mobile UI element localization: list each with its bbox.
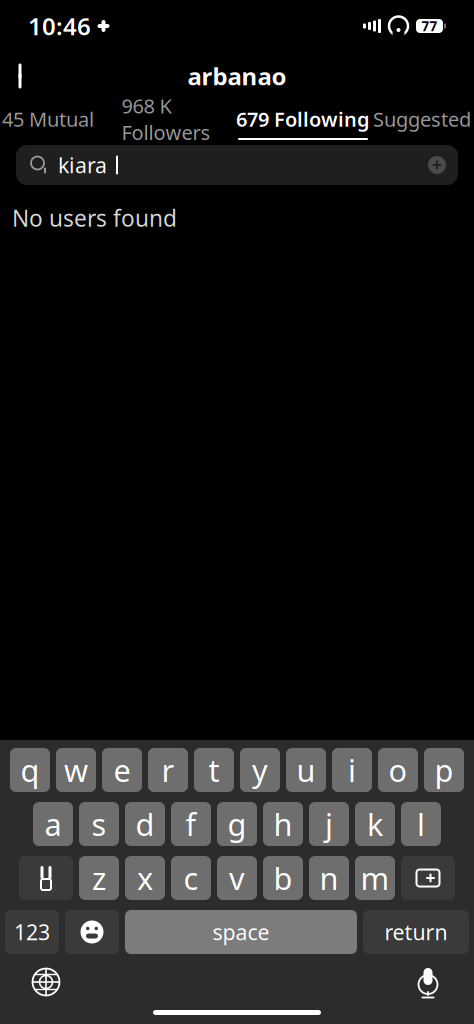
staticText: n [319,858,338,898]
staticText: s [91,804,106,844]
staticText: 679 Following [236,106,370,132]
button[interactable]: 45 Mutual [0,100,96,140]
button[interactable]: Suggested [370,100,474,140]
button[interactable]: 679 Following [236,100,370,140]
button[interactable]: n [309,856,349,900]
button[interactable]: Clear search [420,148,454,182]
staticText: 77 [421,17,437,35]
button[interactable]: g [217,802,257,846]
staticText: Suggested [373,106,471,132]
staticText: b [273,858,292,898]
staticText: x [137,858,153,898]
staticText: q [20,750,39,790]
staticText: r [161,750,174,790]
staticText: z [92,858,106,898]
staticText: w [64,750,88,790]
button[interactable]: m [355,856,395,900]
button[interactable]: b [263,856,303,900]
button[interactable]: w [56,748,96,792]
button[interactable]: Emoji [65,910,119,954]
button[interactable]: v [217,856,257,900]
staticText: t [208,750,219,790]
button[interactable]: 968 K Followers [96,100,236,140]
button[interactable]: Delete [401,856,455,900]
button[interactable]: c [171,856,211,900]
button[interactable]: a [33,802,73,846]
button[interactable]: s [79,802,119,846]
button[interactable]: 123 [5,910,59,954]
staticText: u [296,750,315,790]
staticText: p [434,750,453,790]
staticText: c [183,858,198,898]
staticText: a [44,804,61,844]
staticText: 123 [14,918,50,946]
button[interactable]: Shift [19,856,73,900]
staticText: o [388,750,407,790]
button[interactable]: q [10,748,50,792]
button[interactable]: return [363,910,469,954]
staticText: m [360,858,389,898]
button[interactable]: i [332,748,372,792]
button[interactable]: j [309,802,349,846]
button[interactable]: Back [0,53,46,99]
staticText: g [227,804,246,844]
staticText: No users found [12,203,177,233]
staticText: f [185,804,196,844]
button[interactable]: x [125,856,165,900]
staticText: l [417,804,425,844]
button[interactable]: l [401,802,441,846]
staticText: y [252,750,268,790]
button[interactable]: r [148,748,188,792]
button[interactable]: Switch keyboard [24,960,68,1004]
staticText: space [212,918,269,946]
button[interactable]: o [378,748,418,792]
button[interactable]: e [102,748,142,792]
staticText: v [229,858,245,898]
staticText: 10:46 [28,10,91,42]
staticText: k [367,804,383,844]
button[interactable]: k [355,802,395,846]
staticText: h [273,804,292,844]
button[interactable]: y [240,748,280,792]
staticText: 968 K Followers [121,92,210,145]
staticText: d [135,804,154,844]
staticText: kiara [58,151,107,179]
button[interactable]: d [125,802,165,846]
staticText: arbanao [187,60,286,92]
button[interactable]: h [263,802,303,846]
button[interactable]: u [286,748,326,792]
button[interactable]: f [171,802,211,846]
button[interactable]: t [194,748,234,792]
staticText: e [113,750,130,790]
staticText: 45 Mutual [2,106,94,132]
button[interactable]: space [125,910,357,954]
button[interactable]: p [424,748,464,792]
button[interactable]: z [79,856,119,900]
staticText: j [325,804,333,844]
button[interactable]: Dictate [406,960,450,1004]
staticText: return [384,918,447,946]
staticText: i [348,750,356,790]
